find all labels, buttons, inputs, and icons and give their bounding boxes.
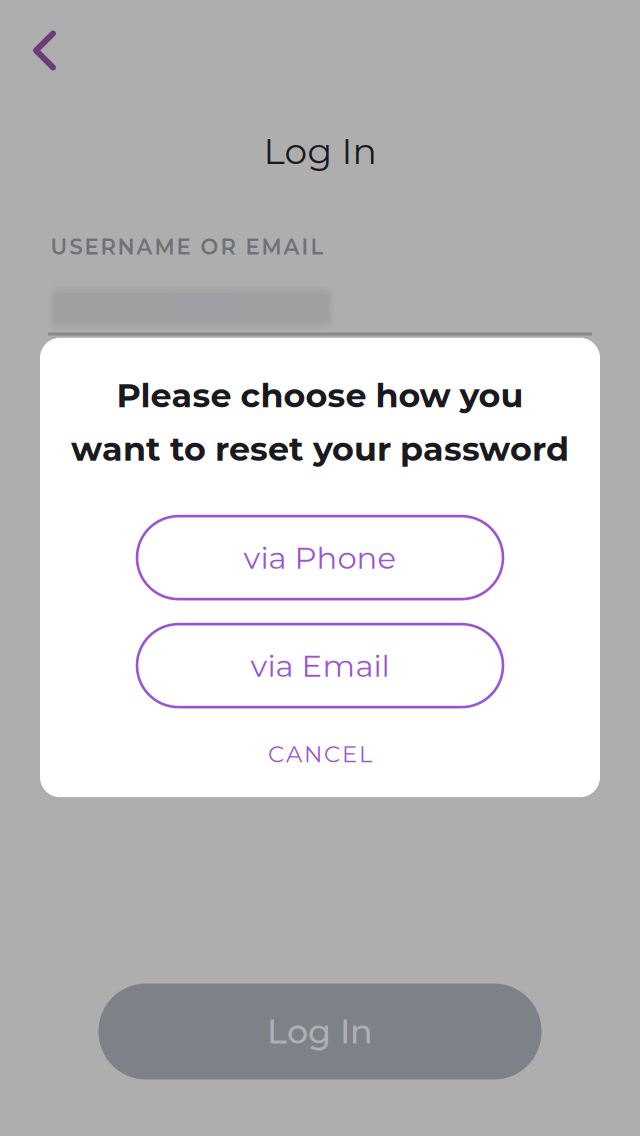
- button[interactable]: C A N C E L: [190, 728, 450, 780]
- staticText: Log In: [263, 129, 376, 173]
- staticText: via Email: [250, 647, 389, 684]
- staticText: Log In: [267, 1011, 373, 1052]
- button[interactable]: via Email: [137, 624, 503, 707]
- button[interactable]: via Phone: [137, 516, 503, 599]
- staticText: want to reset your password: [71, 428, 569, 469]
- button[interactable]: Log In: [98, 983, 541, 1079]
- button[interactable]: Back: [7, 13, 81, 87]
- staticText: via Phone: [243, 539, 396, 576]
- staticText: C A N C E L: [268, 740, 372, 768]
- staticText: Please choose how you: [116, 375, 523, 415]
- staticText: U S E R N A M E O R E M A I L: [50, 234, 323, 260]
